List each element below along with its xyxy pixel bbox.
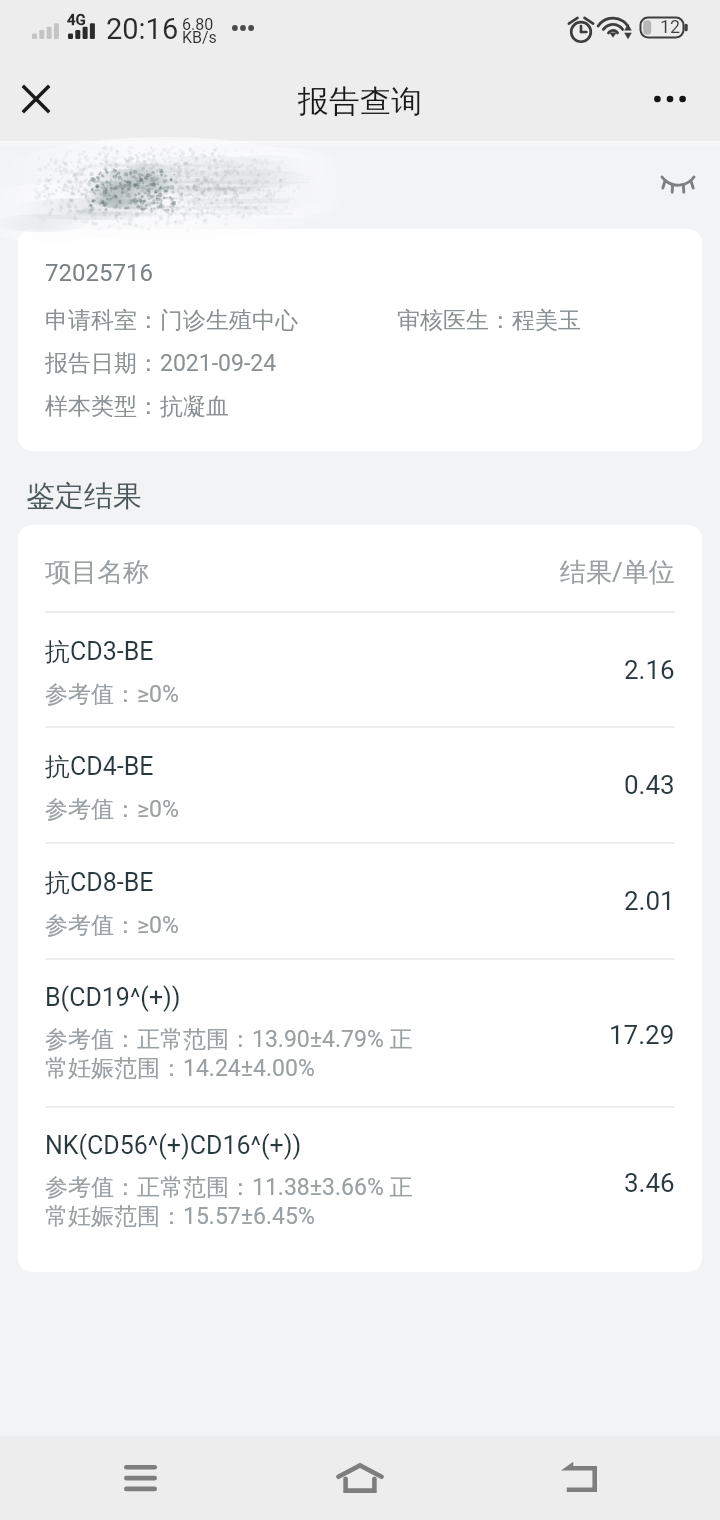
button[interactable]: 抗CD8-BE [18, 844, 702, 958]
button[interactable]: B(CD19^(+)) [18, 960, 702, 1106]
button[interactable]: Recent apps [90, 1436, 190, 1520]
staticText: 72025716 [45, 259, 153, 287]
staticText: 结果/单位 [560, 556, 675, 589]
staticText: 常妊娠范围：14.24±4.00% [45, 1054, 315, 1083]
staticText: 参考值：≥0% [45, 911, 179, 940]
staticText: 3.46 [624, 1168, 675, 1198]
staticText: NK(CD56^(+)CD16^(+)) [45, 1131, 302, 1160]
staticText: 4G [67, 11, 86, 29]
button[interactable]: More options [644, 73, 696, 125]
button[interactable]: Close [12, 75, 60, 123]
staticText: 6.80 [182, 15, 214, 34]
staticText: 0.43 [624, 770, 675, 800]
staticText: 参考值：正常范围：11.38±3.66% 正 [45, 1173, 413, 1202]
button[interactable]: 抗CD3-BE [18, 613, 702, 726]
staticText: 20:16 [106, 12, 179, 46]
staticText: 报告日期：2021-09-24 [45, 349, 277, 378]
staticText: 鉴定结果 [26, 478, 142, 515]
staticText: KB/s [182, 28, 217, 47]
staticText: 12 [660, 16, 681, 37]
staticText: 抗CD4-BE [45, 751, 154, 782]
staticText: 抗CD3-BE [45, 636, 154, 667]
button[interactable]: Hide report details [653, 160, 703, 210]
staticText: 17.29 [609, 1020, 675, 1050]
staticText: 参考值：≥0% [45, 680, 179, 709]
button[interactable]: Home [310, 1436, 410, 1520]
staticText: 参考值：正常范围：13.90±4.79% 正 [45, 1025, 413, 1054]
staticText: B(CD19^(+)) [45, 983, 181, 1012]
button[interactable]: 72025716 [18, 229, 702, 451]
button[interactable]: NK(CD56^(+)CD16^(+)) [18, 1108, 702, 1272]
staticText: 项目名称 [45, 556, 149, 589]
staticText: 样本类型：抗凝血 [45, 392, 229, 421]
staticText: 常妊娠范围：15.57±6.45% [45, 1202, 315, 1231]
staticText: 2.16 [624, 655, 675, 685]
staticText: 2.01 [624, 886, 675, 916]
staticText: 报告查询 [298, 82, 422, 121]
staticText: 申请科室：门诊生殖中心 [45, 306, 298, 335]
staticText: 抗CD8-BE [45, 867, 154, 898]
button[interactable]: 抗CD4-BE [18, 728, 702, 842]
staticText: 审核医生：程美玉 [397, 306, 581, 335]
staticText: 参考值：≥0% [45, 795, 179, 824]
button[interactable]: Back [529, 1436, 629, 1520]
